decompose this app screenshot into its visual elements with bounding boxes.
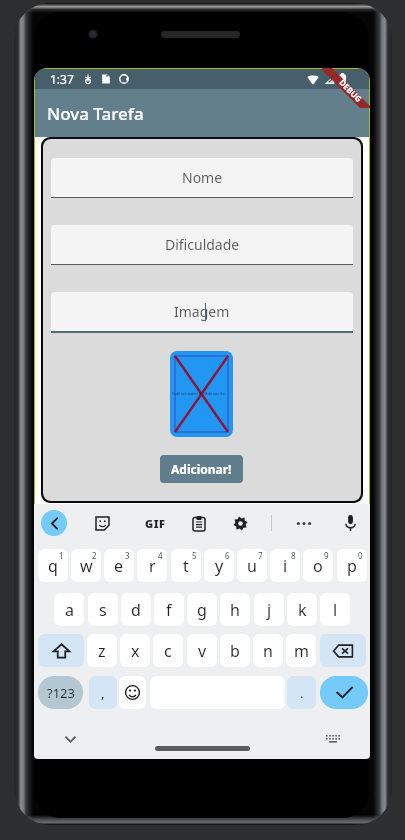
staticText: 4 <box>158 550 163 561</box>
button[interactable]: Emoji <box>119 676 146 709</box>
staticText: . <box>300 684 304 702</box>
staticText: DEBUG <box>337 77 365 104</box>
staticText: k <box>298 599 307 621</box>
staticText: ?123 <box>47 684 75 702</box>
button[interactable]: j <box>254 593 284 626</box>
staticText: s <box>99 599 107 621</box>
staticText: 1 <box>59 550 64 561</box>
staticText: Imagem <box>174 302 230 321</box>
button[interactable]: Stickers <box>88 509 116 537</box>
button[interactable]: s <box>88 593 118 626</box>
staticText: c <box>164 640 172 662</box>
button[interactable]: a <box>54 593 84 626</box>
staticText: z <box>98 640 106 662</box>
button[interactable]: Imagem <box>51 292 353 331</box>
button[interactable]: Back <box>41 510 67 536</box>
staticText: d <box>131 599 141 621</box>
staticText: o <box>313 555 323 577</box>
button[interactable]: , <box>89 676 117 709</box>
staticText: y <box>215 555 224 577</box>
button[interactable]: c <box>153 634 183 667</box>
staticText: w <box>80 555 93 577</box>
button[interactable]: Voice input <box>336 509 364 537</box>
button[interactable]: d <box>121 593 151 626</box>
button[interactable]: Shift <box>38 634 84 667</box>
button[interactable]: Nome <box>51 158 353 197</box>
staticText: 2 <box>92 550 97 561</box>
staticText: 1:37 <box>50 71 74 87</box>
staticText: t <box>183 555 189 577</box>
button[interactable]: e <box>104 549 134 582</box>
button[interactable]: f <box>154 593 184 626</box>
staticText: 6 <box>225 550 230 561</box>
staticText: p <box>347 555 357 577</box>
button[interactable]: Backspace <box>320 634 366 667</box>
staticText: v <box>198 640 207 662</box>
button[interactable]: h <box>220 593 250 626</box>
button[interactable]: k <box>287 593 317 626</box>
button[interactable]: . <box>287 676 316 709</box>
staticText: j <box>267 599 272 621</box>
button[interactable]: x <box>120 634 150 667</box>
staticText: 0 <box>358 550 363 561</box>
button[interactable]: y <box>204 549 234 582</box>
button[interactable]: Dificuldade <box>51 225 353 264</box>
button[interactable]: Settings <box>226 509 254 537</box>
button[interactable]: m <box>286 634 316 667</box>
staticText: b <box>230 640 240 662</box>
staticText: x <box>131 640 140 662</box>
button[interactable]: t <box>171 549 201 582</box>
staticText: 7 <box>258 550 263 561</box>
staticText: Dificuldade <box>165 235 240 254</box>
button[interactable]: n <box>253 634 283 667</box>
staticText: i <box>283 555 288 577</box>
button[interactable]: q <box>38 549 68 582</box>
button[interactable]: l <box>320 593 350 626</box>
staticText: m <box>294 640 309 662</box>
staticText: 8 <box>291 550 296 561</box>
staticText: Could not resolve URL. Make sure the URL… <box>172 392 231 396</box>
staticText: n <box>263 640 273 662</box>
button[interactable]: u <box>237 549 267 582</box>
staticText: 5 <box>192 550 197 561</box>
button[interactable]: Enter <box>320 676 368 709</box>
button[interactable]: Hide keyboard <box>58 727 82 751</box>
staticText: u <box>247 555 257 577</box>
button[interactable]: z <box>87 634 117 667</box>
staticText: Nome <box>182 168 223 187</box>
button[interactable]: v <box>187 634 217 667</box>
staticText: 3 <box>125 550 130 561</box>
staticText: 9 <box>324 550 329 561</box>
button[interactable]: w <box>71 549 101 582</box>
staticText: , <box>101 684 105 702</box>
staticText: r <box>149 555 156 577</box>
staticText: g <box>197 599 207 621</box>
staticText: f <box>166 599 172 621</box>
staticText: q <box>48 555 58 577</box>
staticText: GIF <box>145 516 166 531</box>
button[interactable]: More options <box>290 509 318 537</box>
button[interactable]: ?123 <box>38 676 83 709</box>
staticText: Adicionar! <box>171 461 232 477</box>
button[interactable]: Switch keyboard <box>319 725 347 753</box>
button[interactable]: p <box>337 549 367 582</box>
staticText: a <box>65 599 74 621</box>
button[interactable]: i <box>270 549 300 582</box>
button[interactable]: Adicionar! <box>160 455 243 483</box>
button[interactable]: GIF <box>141 509 169 537</box>
button[interactable]: r <box>137 549 167 582</box>
button[interactable]: b <box>220 634 250 667</box>
staticText: h <box>230 599 240 621</box>
staticText: l <box>333 599 338 621</box>
button[interactable]: Clipboard <box>185 509 213 537</box>
button[interactable]: g <box>187 593 217 626</box>
staticText: Nova Tarefa <box>47 102 144 125</box>
button[interactable]: o <box>303 549 333 582</box>
staticText: e <box>114 555 124 577</box>
